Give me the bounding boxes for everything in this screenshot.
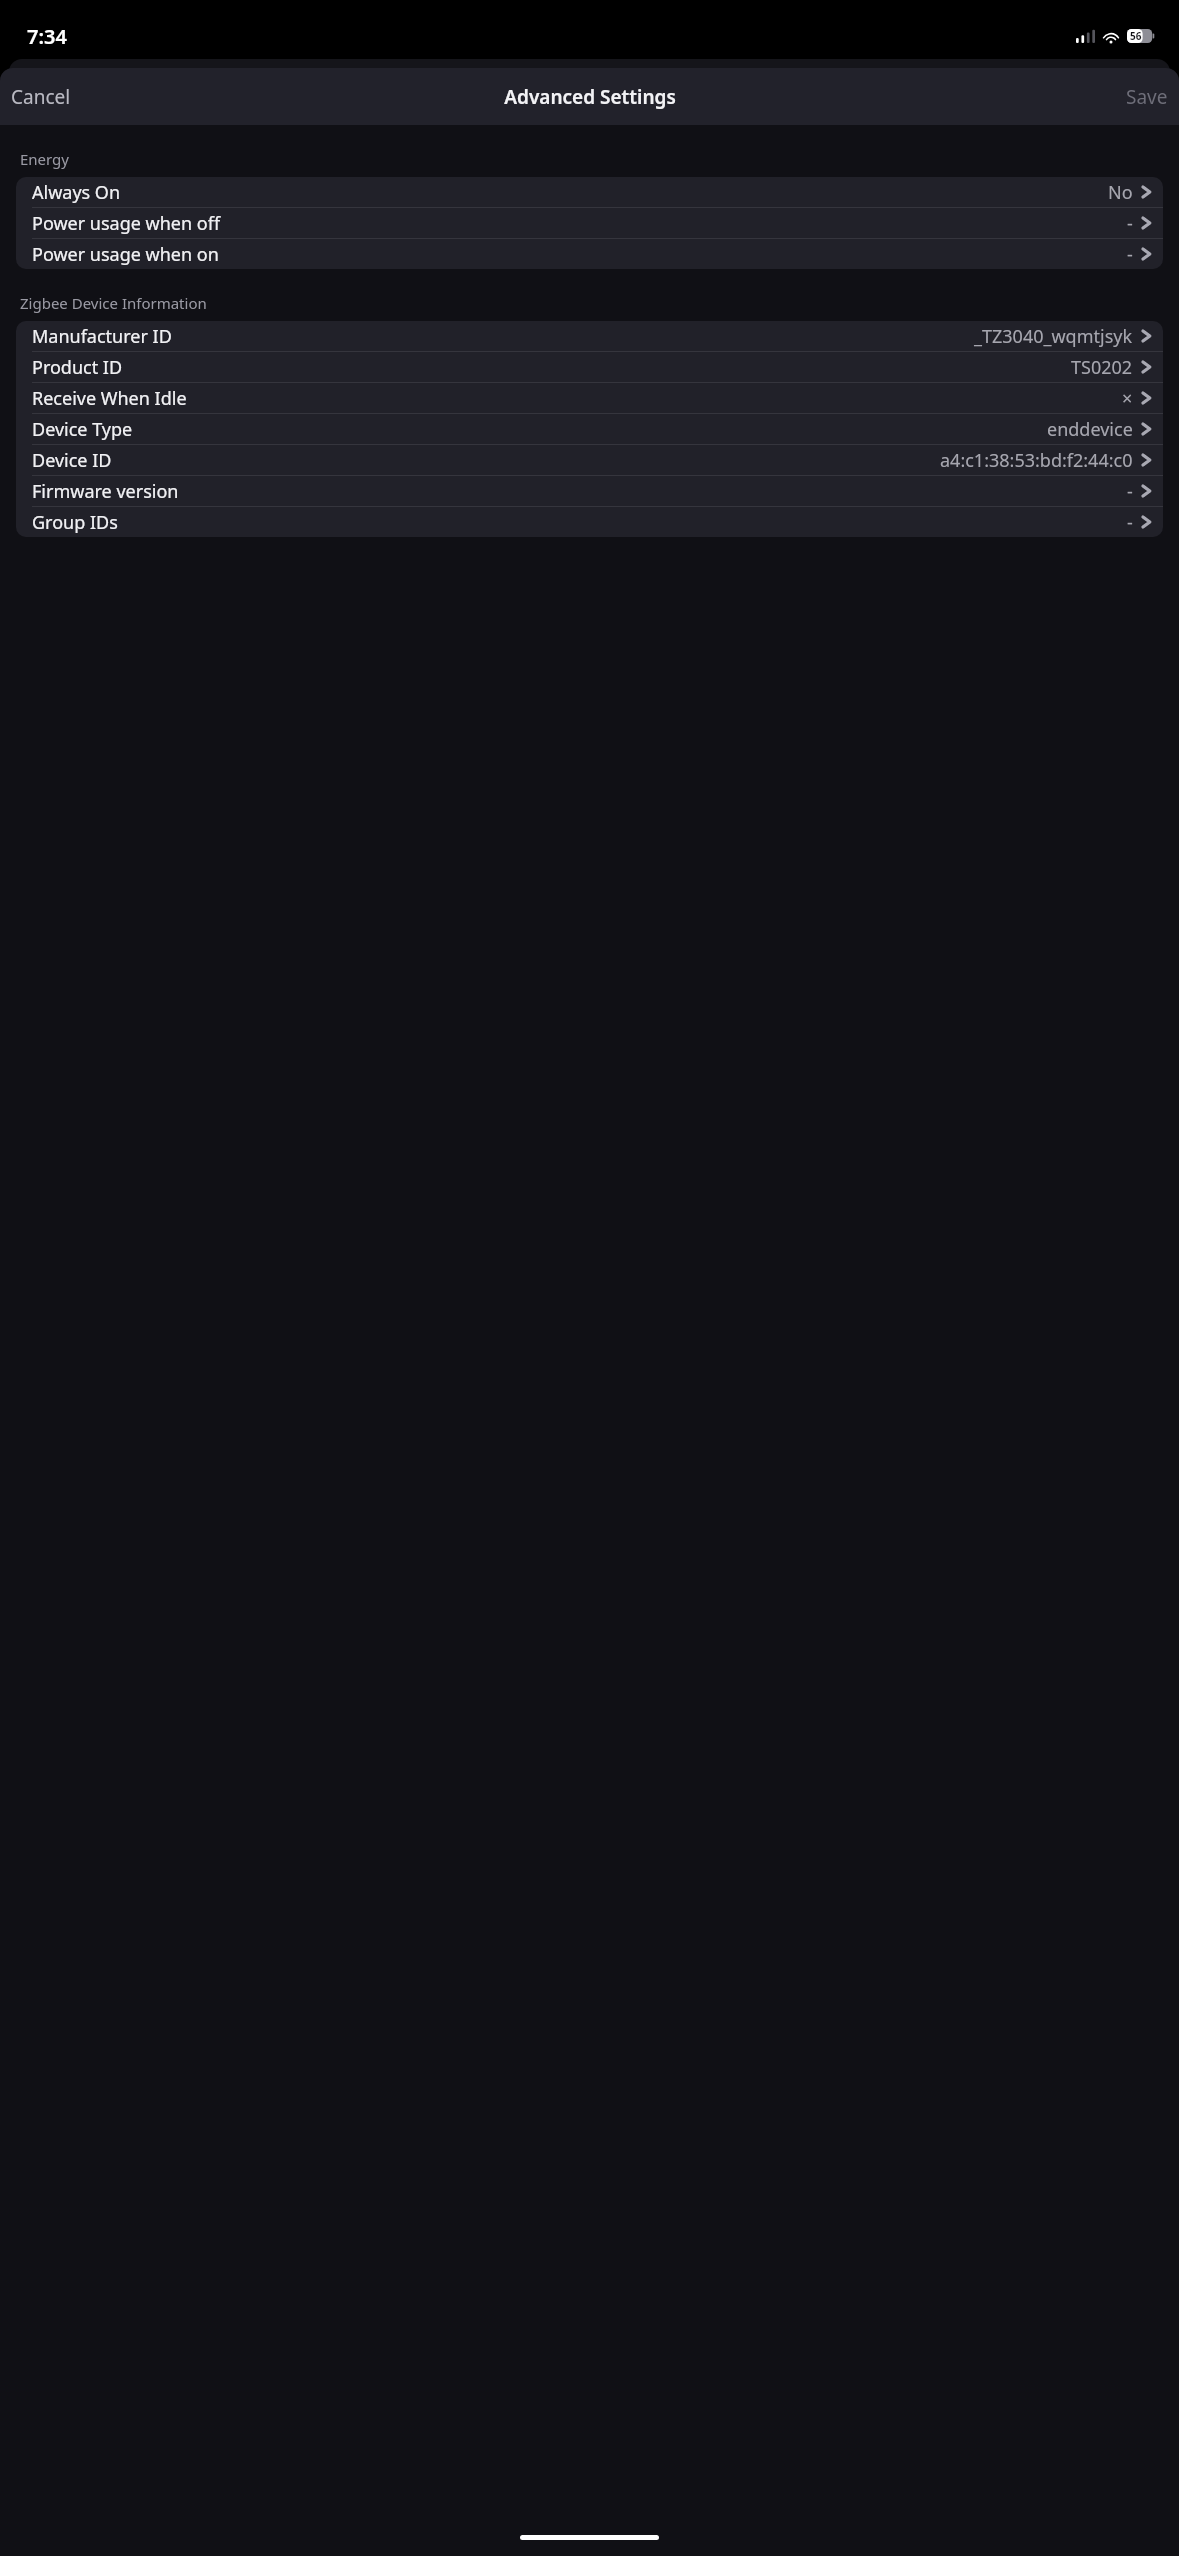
staticText: a4:c1:38:53:bd:f2:44:c0 [940, 448, 1133, 473]
button[interactable]: Device Type [16, 414, 1163, 444]
button[interactable]: Receive When Idle [16, 383, 1163, 413]
button[interactable]: Product ID [16, 352, 1163, 382]
staticText: Group IDs [32, 510, 118, 535]
staticText: Energy [20, 149, 69, 169]
staticText: No [1108, 180, 1133, 205]
staticText: Save [1126, 84, 1168, 110]
staticText: Device Type [32, 417, 133, 442]
staticText: Power usage when on [32, 242, 219, 267]
staticText: Advanced Settings [504, 84, 676, 110]
staticText: Always On [32, 180, 121, 205]
staticText: Manufacturer ID [32, 324, 172, 349]
button[interactable]: Power usage when on [16, 239, 1163, 269]
staticText: - [1127, 479, 1133, 504]
button[interactable]: Manufacturer ID [16, 321, 1163, 351]
staticText: × [1122, 386, 1133, 411]
staticText: Cancel [11, 84, 71, 110]
staticText: - [1127, 510, 1133, 535]
button[interactable]: Cancel [0, 76, 82, 118]
staticText: Firmware version [32, 479, 179, 504]
button[interactable]: Save [1115, 76, 1179, 118]
staticText: TS0202 [1071, 355, 1133, 380]
staticText: Zigbee Device Information [20, 293, 207, 313]
staticText: enddevice [1047, 417, 1133, 442]
staticText: Receive When Idle [32, 386, 187, 411]
button[interactable]: Device ID [16, 445, 1163, 475]
staticText: Power usage when off [32, 211, 221, 236]
staticText: Device ID [32, 448, 112, 473]
staticText: Product ID [32, 355, 123, 380]
staticText: 7:34 [27, 23, 67, 50]
button[interactable]: Power usage when off [16, 208, 1163, 238]
staticText: - [1127, 242, 1133, 267]
button[interactable]: Always On [16, 177, 1163, 207]
staticText: _TZ3040_wqmtjsyk [974, 324, 1133, 349]
button[interactable]: Firmware version [16, 476, 1163, 506]
staticText: 56 [1130, 29, 1142, 43]
staticText: - [1127, 211, 1133, 236]
button[interactable]: Group IDs [16, 507, 1163, 537]
